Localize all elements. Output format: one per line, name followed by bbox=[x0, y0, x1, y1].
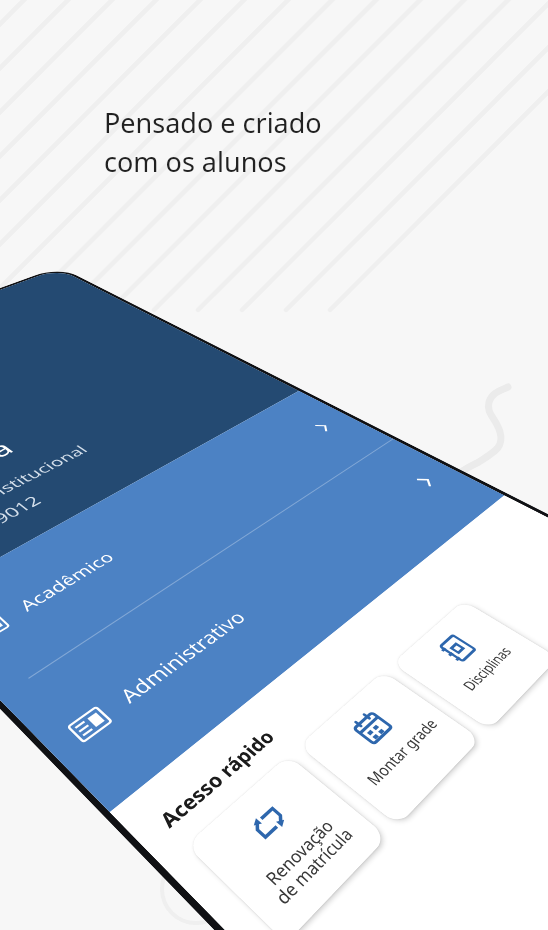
other: Acadêmico bbox=[0, 610, 14, 647]
button[interactable]: Renovação de matrícula bbox=[186, 755, 388, 930]
staticText: Acesso rápido bbox=[153, 725, 280, 833]
button[interactable]: Montar grade bbox=[299, 671, 481, 826]
button[interactable]: Acadêmico bbox=[0, 391, 393, 698]
staticText: Montar grade bbox=[361, 714, 442, 790]
staticText: 123456789012 bbox=[0, 492, 47, 577]
staticText: Renovação de matrícula bbox=[254, 810, 358, 910]
staticText: Instituição institucional bbox=[0, 442, 93, 557]
staticText: Administrativo bbox=[113, 606, 252, 708]
staticText: Acadêmico bbox=[14, 547, 120, 616]
button[interactable]: Administrativo bbox=[0, 439, 503, 811]
staticText: Pensado e criado com os alunos bbox=[104, 104, 322, 180]
staticText: Olá, Maria bbox=[0, 435, 21, 531]
other: Administrativo bbox=[62, 702, 117, 747]
button[interactable]: Disciplinas bbox=[392, 601, 548, 730]
staticText: Disciplinas bbox=[457, 643, 516, 694]
